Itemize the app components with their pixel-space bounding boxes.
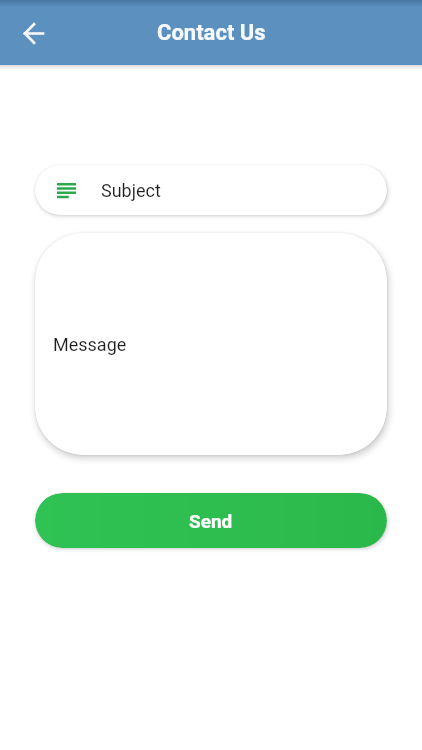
button[interactable]: Send <box>35 493 387 548</box>
button[interactable]: Message <box>35 233 387 455</box>
button[interactable] <box>12 12 54 54</box>
staticText: Subject <box>101 180 161 201</box>
staticText: Contact Us <box>157 20 266 46</box>
button[interactable]: Subject <box>35 165 387 215</box>
staticText: Send <box>189 510 233 532</box>
staticText: Message <box>53 334 127 355</box>
